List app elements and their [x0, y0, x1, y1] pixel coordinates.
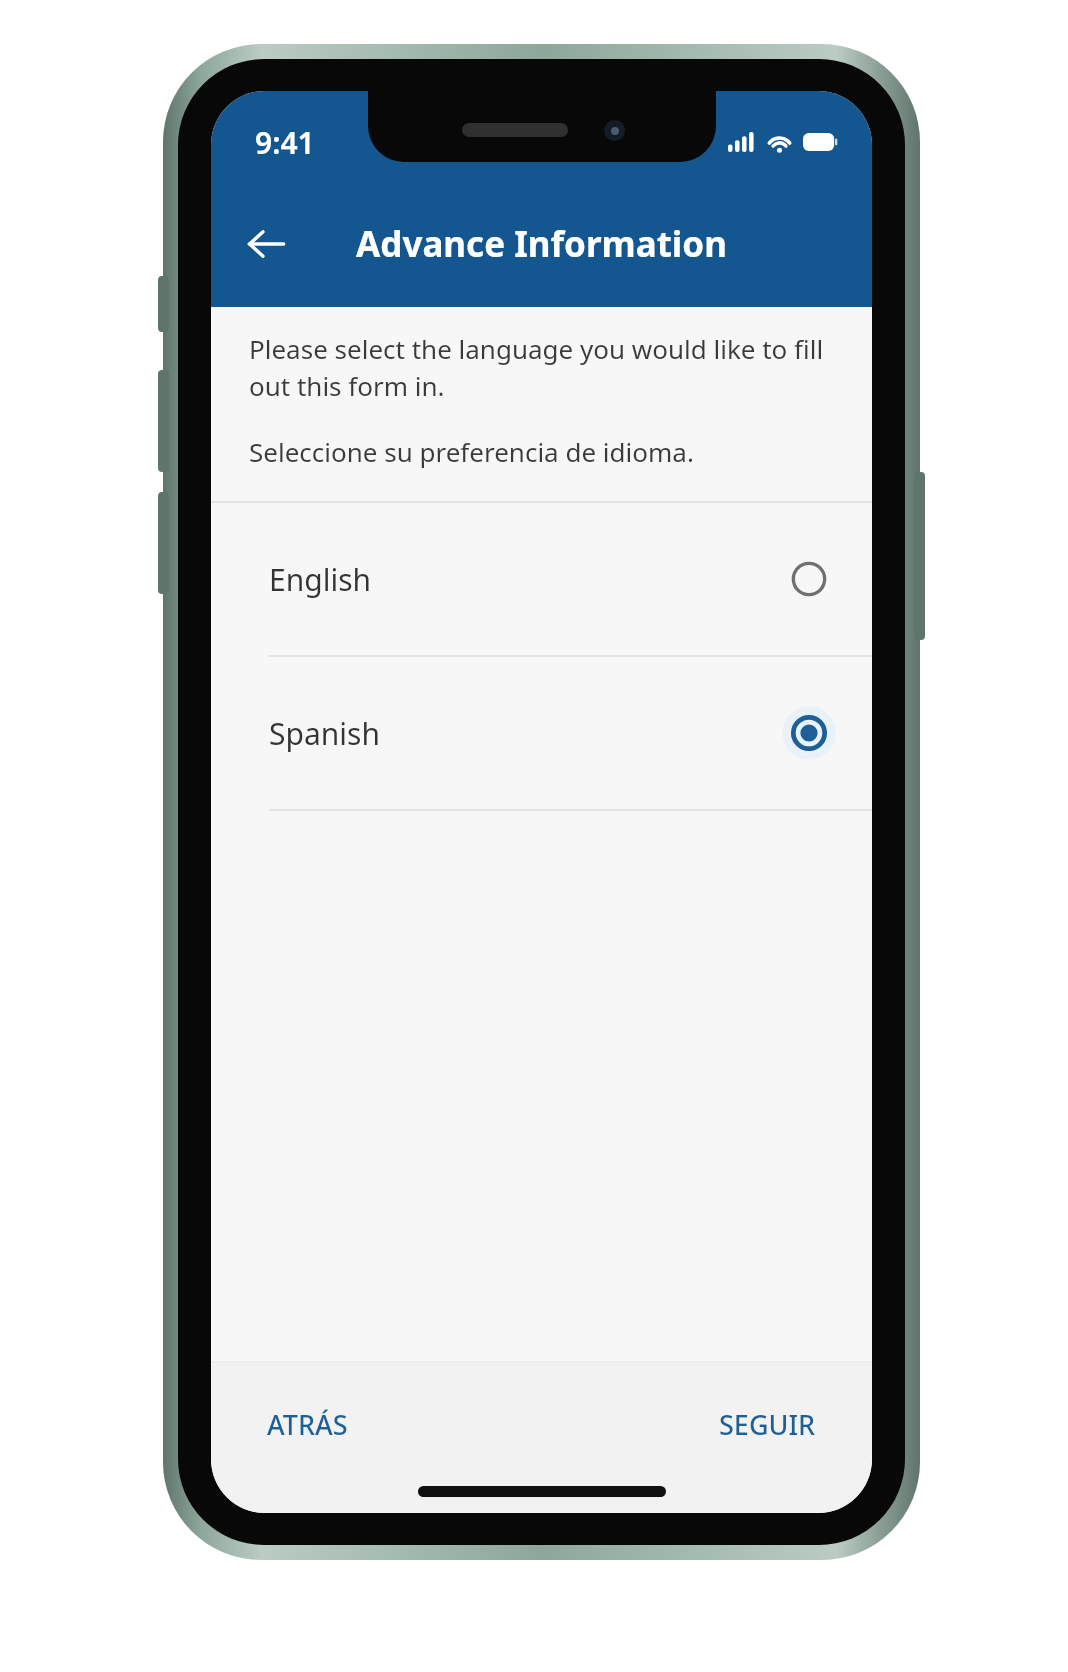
button[interactable]: Back [227, 205, 305, 283]
button[interactable]: Spanish [211, 657, 872, 809]
button[interactable]: SEGUIR [701, 1392, 834, 1457]
staticText: Advance Information [356, 220, 727, 268]
staticText: Please select the language you would lik… [249, 331, 834, 404]
staticText: 9:41 [255, 122, 315, 163]
staticText: Seleccione su preferencia de idioma. [249, 434, 694, 469]
staticText: Spanish [269, 713, 380, 754]
staticText: English [269, 559, 372, 600]
button[interactable]: English [211, 503, 872, 655]
button[interactable]: ATRÁS [249, 1392, 366, 1457]
staticText: SEGUIR [719, 1406, 816, 1443]
staticText: ATRÁS [267, 1406, 348, 1443]
